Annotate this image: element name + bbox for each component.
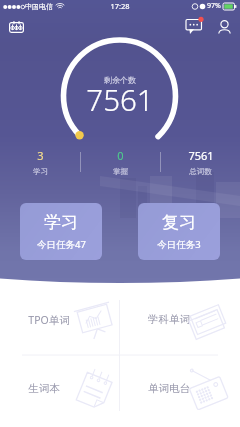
button[interactable]: Calendar [3,14,29,40]
staticText: 97% [207,1,221,11]
staticText: 今日任务3 [157,238,201,251]
staticText: 7561 [188,148,214,163]
staticText: 中国电信 [25,2,53,11]
button[interactable]: 学科单词 [120,292,240,347]
staticText: 17:28 [110,1,130,11]
staticText: 学科单词 [148,313,190,326]
staticText: 3 [37,148,44,163]
staticText: 7561 [0,79,240,119]
staticText: 复习 [162,212,196,233]
button[interactable]: 3 [0,148,80,176]
staticText: 掌握 [113,167,128,176]
button[interactable]: 7561 [161,148,240,176]
button[interactable]: 复习 [138,203,220,260]
staticText: 今日任务47 [37,238,86,251]
staticText: 生词本 [28,382,60,395]
staticText: 学习 [33,167,48,176]
staticText: 学习 [44,212,78,233]
button[interactable]: Profile [211,14,237,40]
staticText: 0 [117,148,124,163]
button[interactable]: 学习 [20,203,102,260]
button[interactable]: 生词本 [0,361,120,416]
staticText: 单词电台 [148,382,190,395]
button[interactable]: Messages [182,14,208,40]
staticText: 剩余个数 [0,75,240,85]
staticText: TPO单词 [28,313,70,327]
button[interactable]: TPO单词 [0,292,120,347]
button[interactable]: 单词电台 [120,361,240,416]
staticText: 总词数 [189,167,212,176]
button[interactable]: 0 [81,148,160,176]
